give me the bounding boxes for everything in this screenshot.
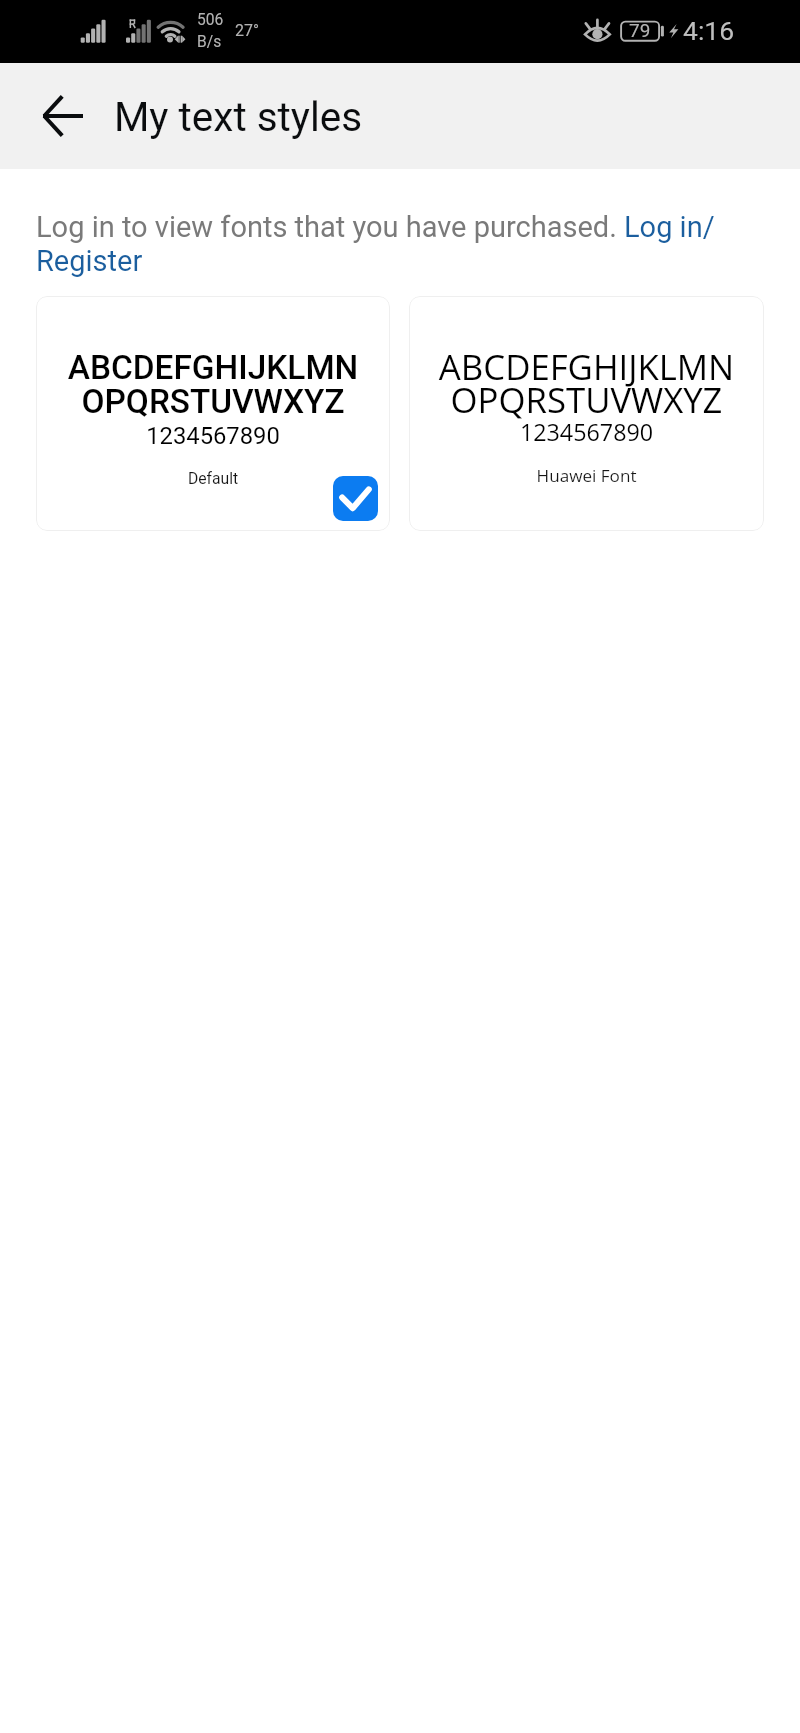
staticText: Huawei Font <box>409 464 764 487</box>
button[interactable]: ABCDEFGHIJKLMN OPQRSTUVWXYZ <box>409 296 764 531</box>
button[interactable]: Back <box>32 85 94 147</box>
button[interactable]: Log in to view fonts that you have purch… <box>36 210 770 278</box>
staticText: 4:16 <box>683 15 735 46</box>
staticText: ABCDEFGHIJKLMN OPQRSTUVWXYZ <box>36 348 390 421</box>
staticText: ABCDEFGHIJKLMN OPQRSTUVWXYZ <box>409 343 764 423</box>
staticText: 27° <box>235 21 259 40</box>
staticText: 1234567890 <box>36 422 390 450</box>
staticText: 506 <box>197 11 224 29</box>
staticText: My text styles <box>114 93 363 140</box>
staticText: Default <box>36 469 390 487</box>
button[interactable]: ABCDEFGHIJKLMN OPQRSTUVWXYZ <box>36 296 390 531</box>
staticText: 1234567890 <box>409 416 764 448</box>
button[interactable]: Selected font <box>333 476 378 521</box>
staticText: 79 <box>629 19 651 41</box>
staticText: B/s <box>197 33 222 51</box>
